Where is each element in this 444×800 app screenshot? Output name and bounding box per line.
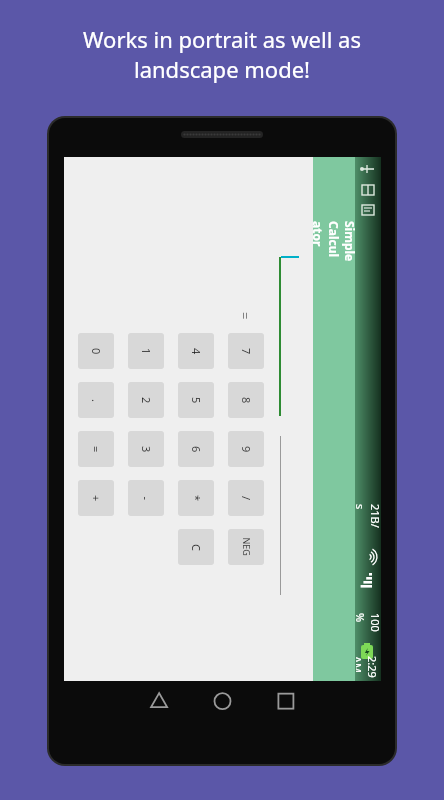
staticText: Simple Calculator — [310, 221, 358, 263]
button[interactable]: 9 — [228, 431, 264, 467]
button[interactable]: NEG — [228, 529, 264, 565]
staticText: 7 — [239, 348, 254, 355]
button[interactable]: . — [78, 382, 114, 418]
staticText: 2 — [139, 397, 154, 404]
button[interactable]: = — [78, 431, 114, 467]
other: Status icons — [358, 161, 378, 225]
staticText: 3 — [139, 446, 154, 453]
staticText: 100% — [353, 613, 383, 639]
staticText: . — [89, 399, 104, 402]
staticText: 4 — [189, 348, 204, 355]
button[interactable]: Recents — [258, 681, 308, 721]
staticText: 5 — [189, 397, 204, 404]
button[interactable]: 2 — [128, 382, 164, 418]
button[interactable]: 8 — [228, 382, 264, 418]
staticText: 8 — [239, 397, 254, 404]
button[interactable]: 3 — [128, 431, 164, 467]
button[interactable]: * — [178, 480, 214, 516]
button[interactable]: 7 — [228, 333, 264, 369]
staticText: 6 — [189, 446, 204, 453]
button[interactable]: Home — [198, 681, 248, 721]
staticText: Works in portrait as well as landscape m… — [83, 24, 361, 84]
staticText: 2:29 AM — [356, 656, 380, 682]
button[interactable]: / — [228, 480, 264, 516]
staticText: NEG — [240, 537, 252, 556]
button[interactable]: + — [78, 480, 114, 516]
staticText: = — [89, 446, 104, 453]
staticText: C — [189, 544, 204, 551]
button[interactable]: 1 — [128, 333, 164, 369]
button[interactable]: Back — [140, 681, 190, 721]
staticText: 0 — [89, 348, 104, 355]
staticText: + — [89, 495, 104, 502]
staticText: * — [189, 495, 204, 502]
button[interactable]: 4 — [178, 333, 214, 369]
staticText: = — [236, 312, 254, 320]
button[interactable]: 6 — [178, 431, 214, 467]
staticText: 21B/s — [353, 504, 383, 530]
button[interactable]: C — [178, 529, 214, 565]
staticText: 9 — [239, 446, 254, 453]
button[interactable]: 5 — [178, 382, 214, 418]
button[interactable]: - — [128, 480, 164, 516]
button[interactable]: 0 — [78, 333, 114, 369]
staticText: / — [239, 496, 254, 501]
staticText: - — [138, 496, 153, 500]
staticText: 1 — [139, 348, 154, 355]
